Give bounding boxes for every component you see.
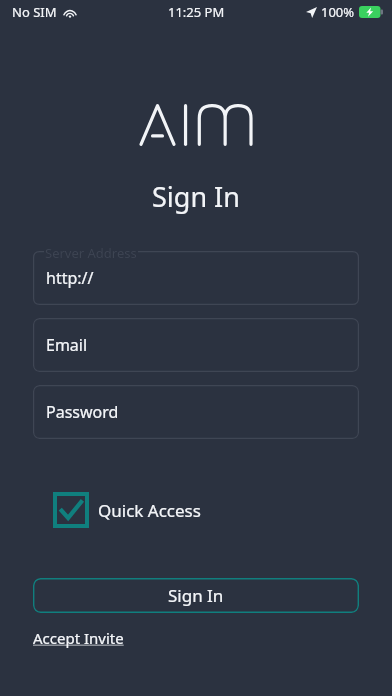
button[interactable]: Accept Invite [33,628,124,648]
staticText: No SIM [12,3,57,21]
staticText: Email [46,334,88,356]
staticText: Server Address [45,244,137,262]
button[interactable]: Server Address [33,251,359,305]
staticText: Quick Access [98,499,201,522]
staticText: http:// [46,267,94,289]
staticText: Sign In [152,178,240,215]
staticText: Sign In [168,584,224,607]
staticText: Password [46,401,119,423]
button[interactable]: Sign In [33,578,359,613]
staticText: Accept Invite [33,628,124,648]
staticText: 100% [321,3,355,21]
button[interactable]: Password [33,385,359,439]
button[interactable]: Email [33,318,359,372]
button[interactable]: Quick Access [53,492,201,528]
staticText: 11:25 PM [168,3,225,21]
